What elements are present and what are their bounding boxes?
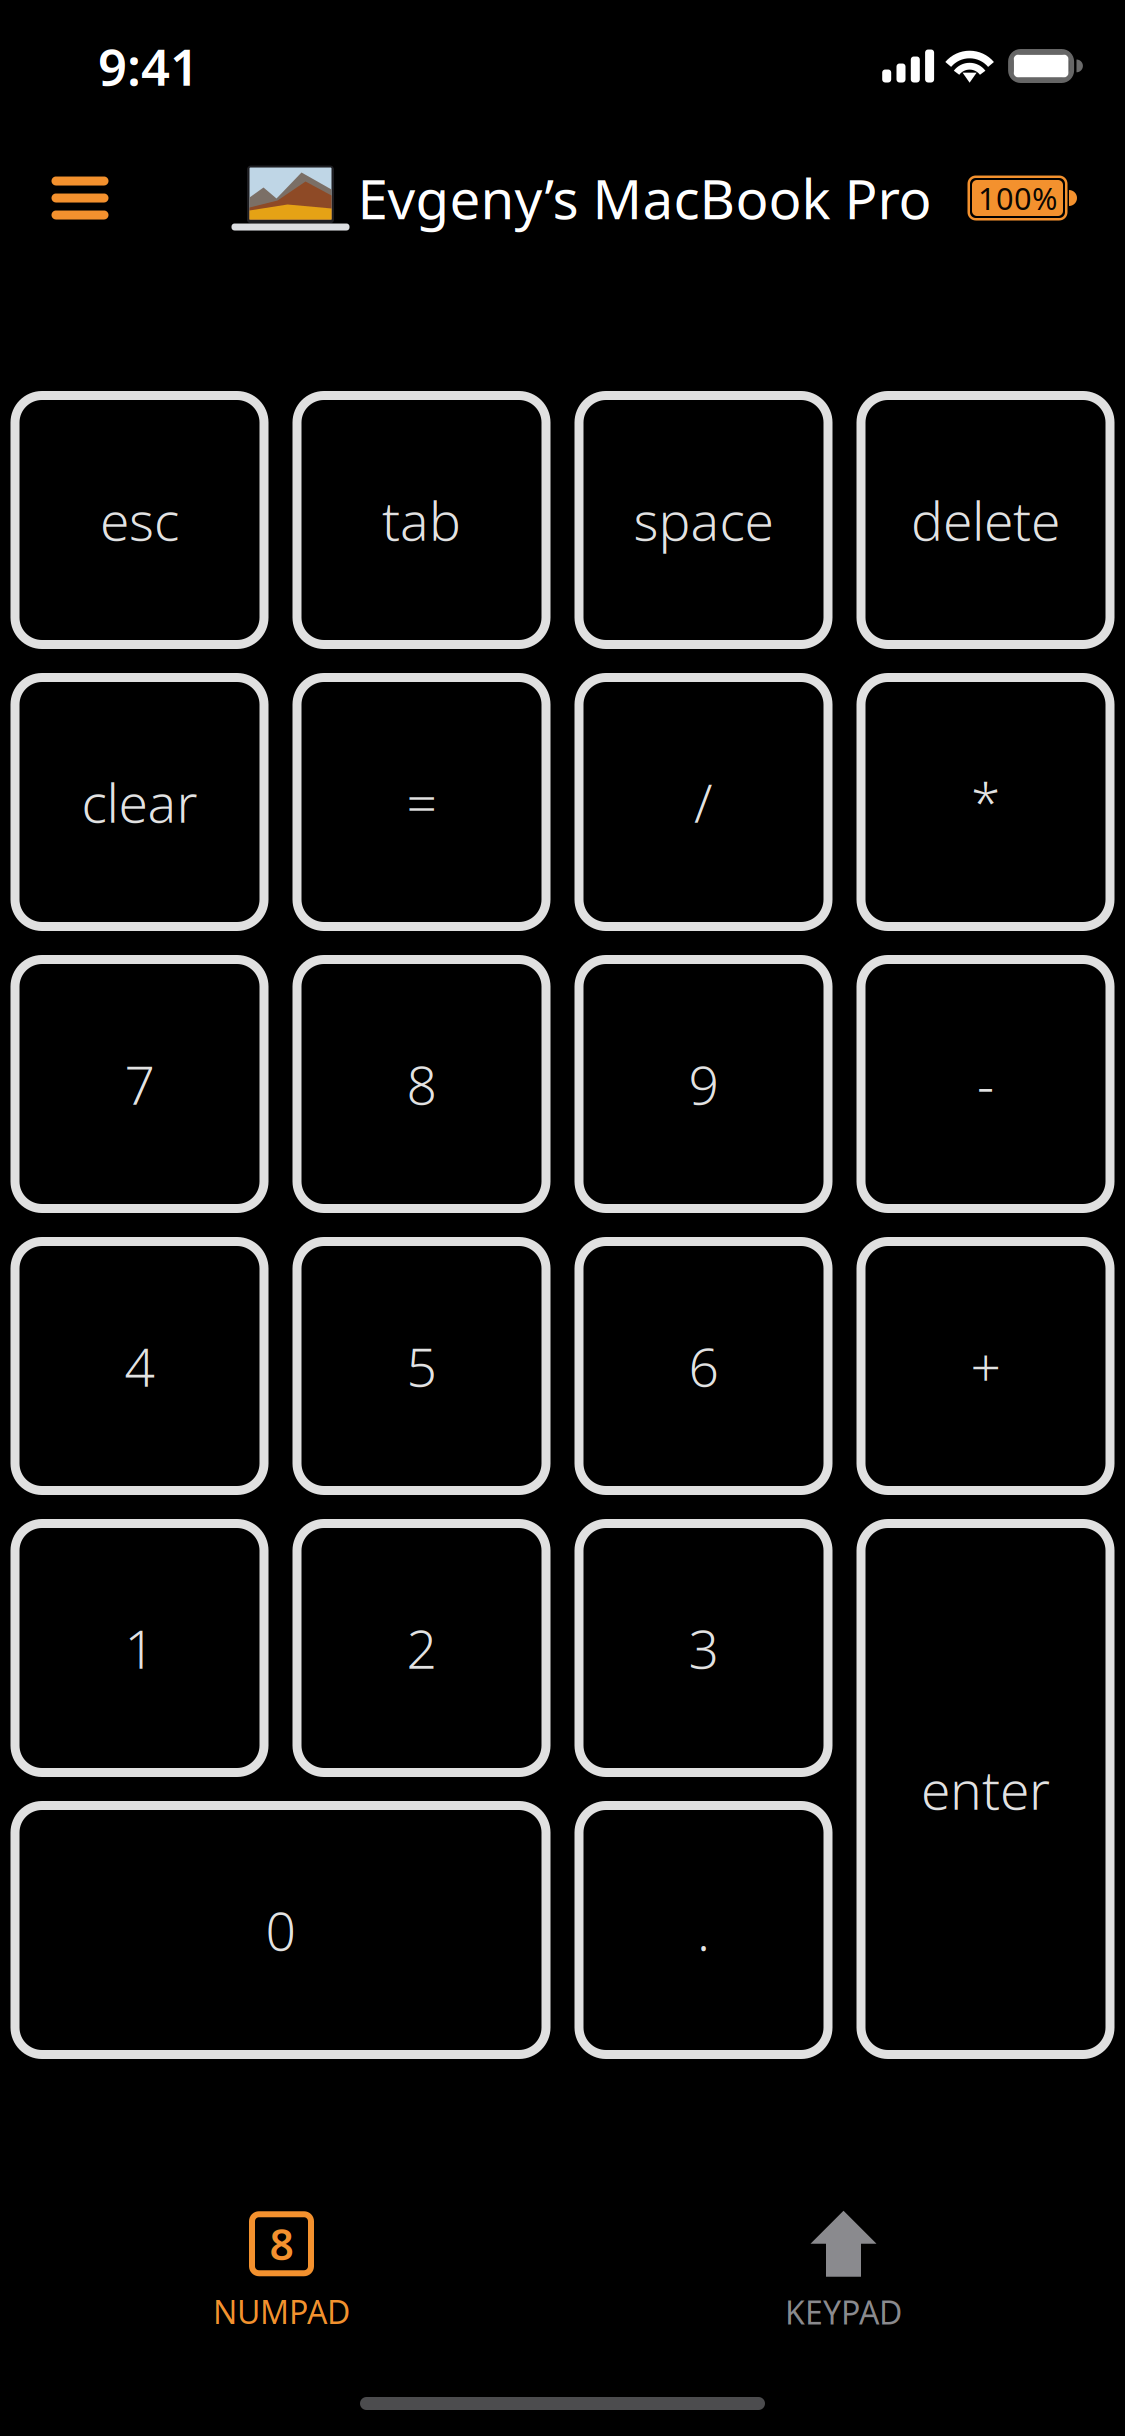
staticText: Evgeny’s MacBook Pro: [357, 162, 931, 234]
staticText: 6: [688, 1331, 718, 1401]
button[interactable]: 0: [10, 1801, 550, 2059]
staticText: NUMPAD: [213, 2290, 350, 2333]
button[interactable]: Menu: [25, 148, 135, 248]
button[interactable]: space: [574, 391, 832, 649]
button[interactable]: 6: [574, 1237, 832, 1495]
staticText: *: [971, 767, 1000, 837]
button[interactable]: 2: [292, 1519, 550, 1777]
staticText: 5: [406, 1331, 436, 1401]
staticText: 4: [124, 1331, 154, 1401]
button[interactable]: equals: [292, 673, 550, 931]
button[interactable]: decimal point: [574, 1801, 832, 2059]
button[interactable]: clear: [10, 673, 268, 931]
button[interactable]: enter: [856, 1519, 1114, 2059]
staticText: KEYPAD: [785, 2291, 902, 2333]
button[interactable]: 3: [574, 1519, 832, 1777]
staticText: 9:41: [98, 32, 199, 100]
staticText: delete: [911, 485, 1060, 555]
staticText: =: [406, 767, 436, 837]
staticText: space: [633, 485, 773, 555]
staticText: 2: [406, 1613, 436, 1683]
button[interactable]: tab: [292, 391, 550, 649]
staticText: clear: [81, 767, 197, 837]
staticText: 0: [265, 1895, 295, 1965]
staticText: 8: [269, 2215, 293, 2272]
button[interactable]: 9: [574, 955, 832, 1213]
staticText: tab: [382, 485, 461, 555]
staticText: /: [694, 767, 713, 837]
button[interactable]: divide: [574, 673, 832, 931]
staticText: 1: [124, 1613, 154, 1683]
staticText: 9: [688, 1049, 718, 1119]
staticText: 3: [688, 1613, 718, 1683]
button[interactable]: plus: [856, 1237, 1114, 1495]
button[interactable]: esc: [10, 391, 268, 649]
button[interactable]: 8: [292, 955, 550, 1213]
button[interactable]: 7: [10, 955, 268, 1213]
staticText: esc: [100, 485, 179, 555]
button[interactable]: minus: [856, 955, 1114, 1213]
staticText: 100%: [978, 178, 1057, 218]
button[interactable]: 4: [10, 1237, 268, 1495]
staticText: +: [970, 1331, 1000, 1401]
staticText: 7: [124, 1049, 154, 1119]
button[interactable]: KEYPAD: [562, 2202, 1124, 2342]
staticText: 8: [406, 1049, 436, 1119]
button[interactable]: 5: [292, 1237, 550, 1495]
staticText: .: [697, 1895, 710, 1965]
button[interactable]: multiply: [856, 673, 1114, 931]
staticText: enter: [921, 1754, 1050, 1824]
button[interactable]: 8: [0, 2202, 562, 2342]
button[interactable]: 1: [10, 1519, 268, 1777]
staticText: -: [977, 1049, 994, 1119]
button[interactable]: delete: [856, 391, 1114, 649]
